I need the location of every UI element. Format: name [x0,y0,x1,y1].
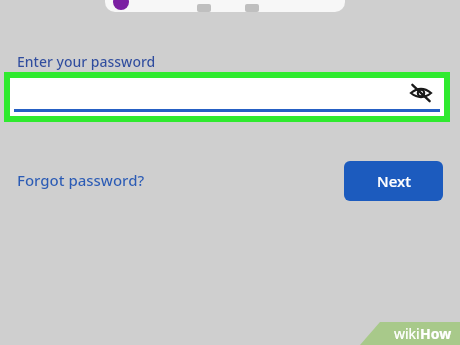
staticText: wiki [394,324,420,343]
button[interactable] [105,0,345,12]
staticText: How [420,324,452,343]
button[interactable]: Show password [406,78,436,108]
button[interactable]: Show password [10,78,444,116]
staticText: Enter your password [17,52,156,71]
button[interactable]: Forgot password? [17,170,145,190]
button[interactable]: Next [344,161,443,201]
staticText: Next [377,171,411,191]
staticText: Forgot password? [17,170,145,190]
